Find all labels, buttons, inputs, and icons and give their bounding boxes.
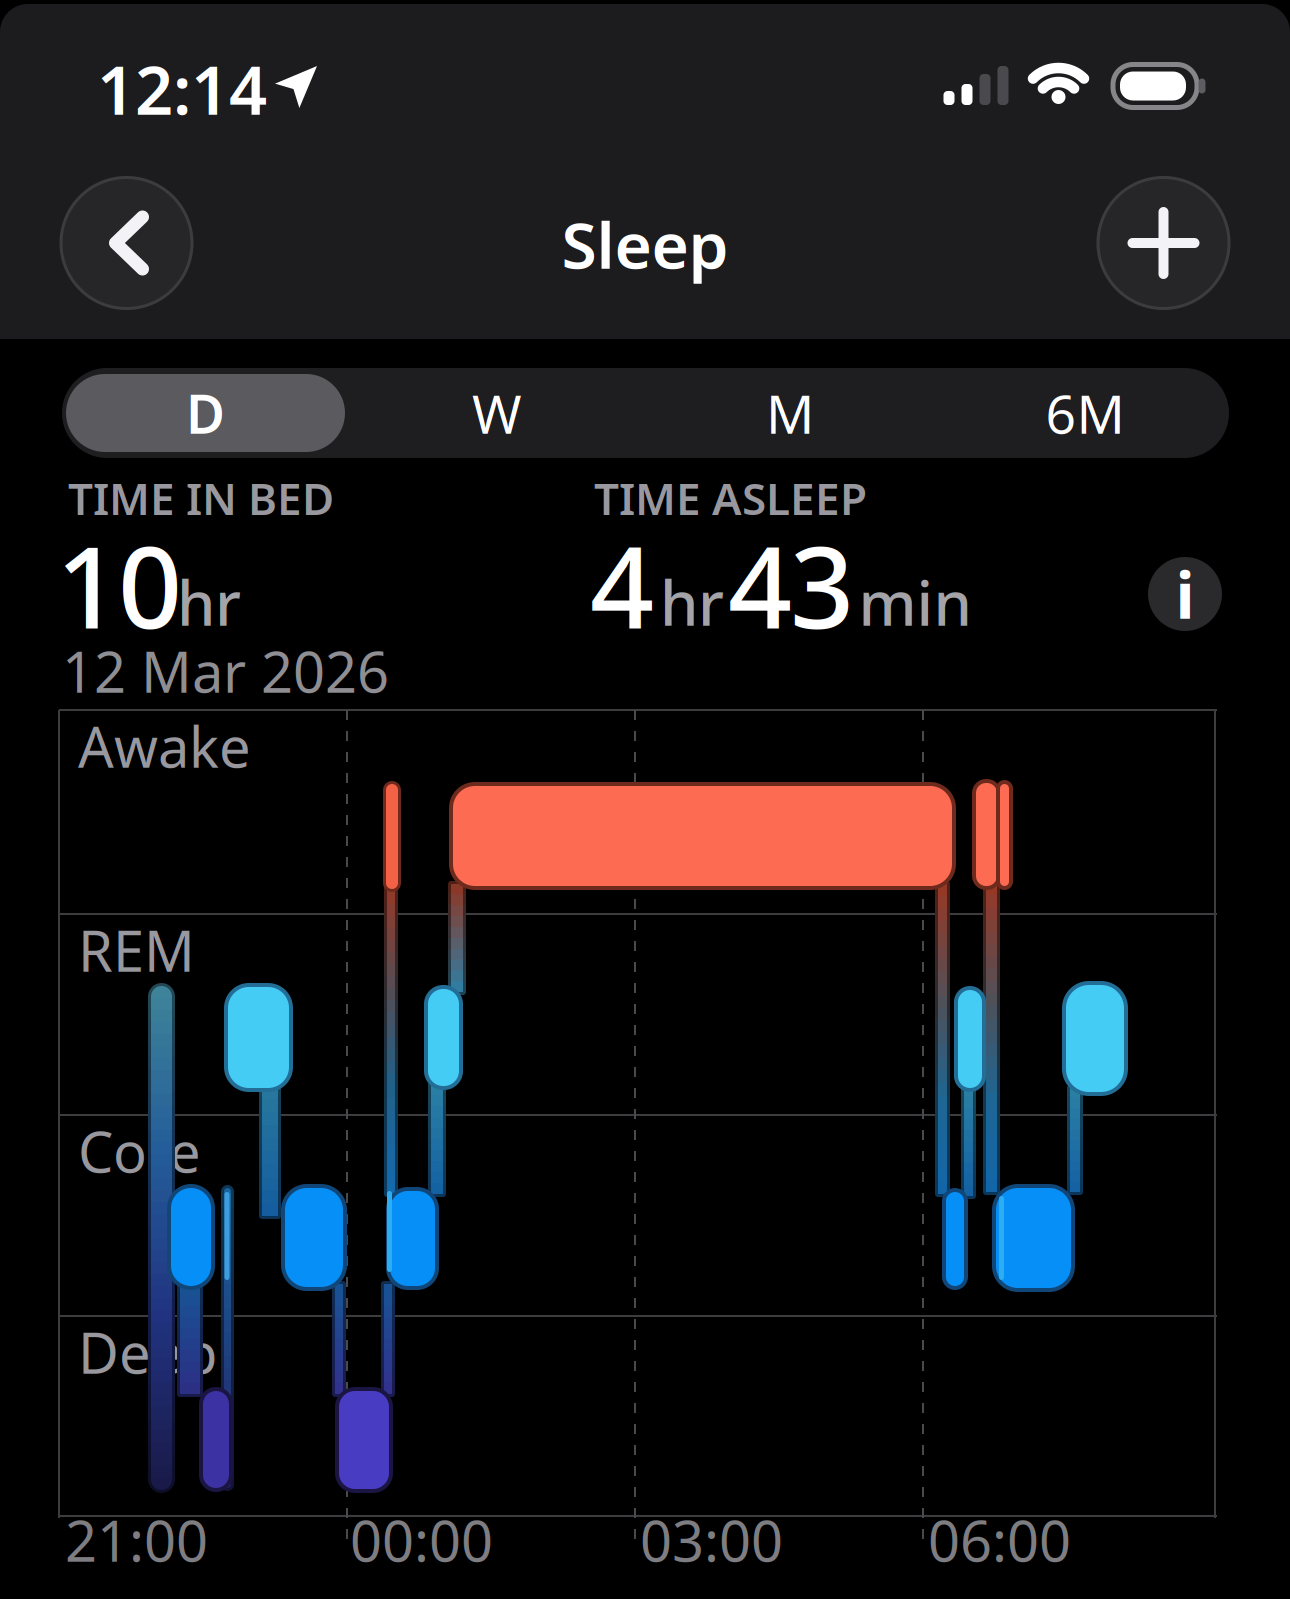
staticText: 21:00: [65, 1503, 208, 1577]
staticText: min: [858, 561, 971, 643]
staticText: 12:14: [97, 45, 267, 133]
staticText: 10: [56, 511, 182, 659]
staticText: Deep: [78, 1315, 217, 1389]
button[interactable]: M: [660, 370, 920, 456]
staticText: 6M: [1045, 378, 1124, 448]
staticText: 4: [590, 511, 654, 659]
staticText: 06:00: [928, 1503, 1071, 1577]
button[interactable]: W: [367, 370, 627, 456]
staticText: TIME ASLEEP: [594, 469, 867, 527]
staticText: 12 Mar 2026: [62, 634, 389, 708]
button[interactable]: D: [66, 374, 345, 452]
staticText: M: [766, 378, 814, 448]
button[interactable]: i: [1148, 557, 1222, 631]
staticText: Core: [78, 1114, 201, 1188]
staticText: W: [472, 378, 522, 448]
staticText: 03:00: [640, 1503, 783, 1577]
button[interactable]: [61, 177, 192, 308]
staticText: TIME IN BED: [68, 469, 334, 527]
staticText: Sleep: [561, 201, 728, 286]
staticText: hr: [660, 561, 724, 643]
staticText: i: [1175, 551, 1194, 636]
staticText: hr: [177, 561, 241, 643]
staticText: Awake: [78, 709, 251, 783]
staticText: REM: [78, 913, 195, 987]
staticText: 00:00: [350, 1503, 493, 1577]
staticText: 43: [728, 511, 854, 659]
button[interactable]: 6M: [955, 370, 1215, 456]
button[interactable]: [1098, 177, 1229, 308]
staticText: D: [186, 378, 225, 448]
